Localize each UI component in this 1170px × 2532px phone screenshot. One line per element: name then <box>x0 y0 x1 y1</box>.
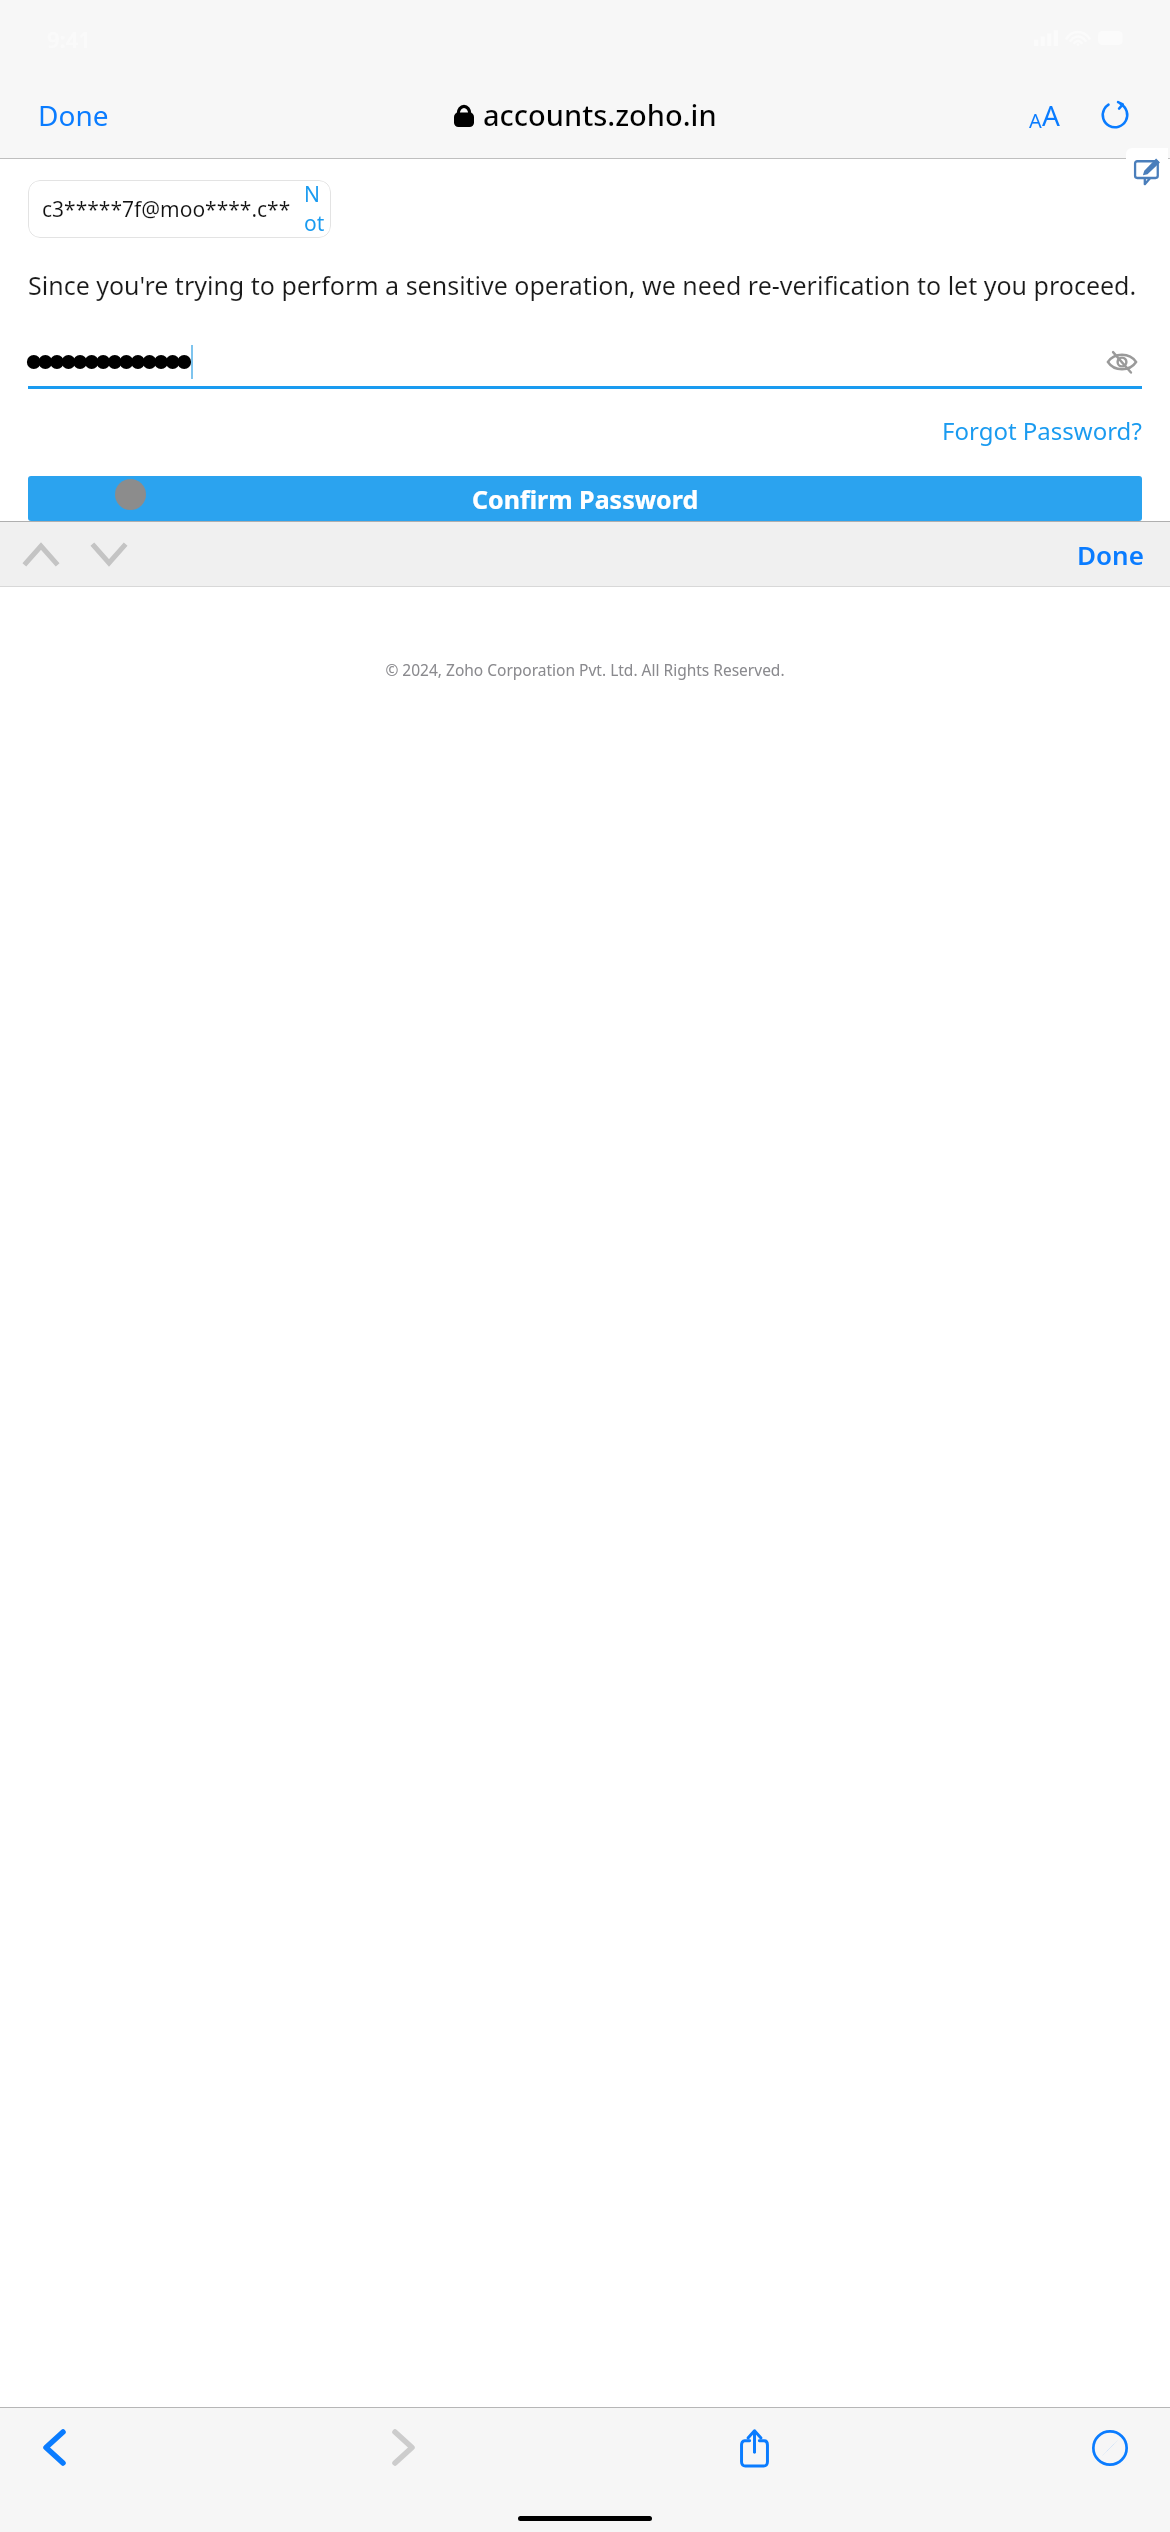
staticText: Done <box>1077 537 1144 572</box>
button[interactable]: Confirm Password <box>28 476 1142 521</box>
staticText: Not you? <box>304 180 331 238</box>
button[interactable]: Text size <box>1019 86 1070 144</box>
button[interactable]: Next field <box>82 534 136 575</box>
button[interactable]: Forgot Password? <box>942 414 1170 447</box>
button[interactable]: Reload <box>1090 90 1140 140</box>
button[interactable]: Back <box>30 2416 79 2479</box>
button[interactable]: Done <box>0 86 125 144</box>
staticText: Confirm Password <box>472 482 699 516</box>
staticText: A <box>1029 107 1042 134</box>
button[interactable]: Done <box>1057 527 1170 582</box>
staticText: Since you're trying to perform a sensiti… <box>28 268 1137 302</box>
staticText: accounts.zoho.in <box>483 95 717 134</box>
button[interactable]: Show password <box>28 338 1142 386</box>
button[interactable]: Feedback <box>1126 148 1168 195</box>
staticText: A <box>1042 96 1060 134</box>
button[interactable]: Share <box>729 2418 780 2478</box>
staticText: Forgot Password? <box>942 414 1142 447</box>
staticText: © 2024, Zoho Corporation Pvt. Ltd. All R… <box>0 659 1170 680</box>
staticText: Done <box>38 96 109 134</box>
button[interactable]: Show password <box>1102 347 1142 377</box>
button[interactable]: Bookmarks <box>1080 2418 1140 2478</box>
button[interactable]: Forward <box>379 2416 428 2479</box>
button[interactable]: c3*****7f@moo****.c** <box>28 180 331 238</box>
button[interactable]: Previous field <box>14 534 68 575</box>
staticText: c3*****7f@moo****.c** <box>42 195 291 224</box>
